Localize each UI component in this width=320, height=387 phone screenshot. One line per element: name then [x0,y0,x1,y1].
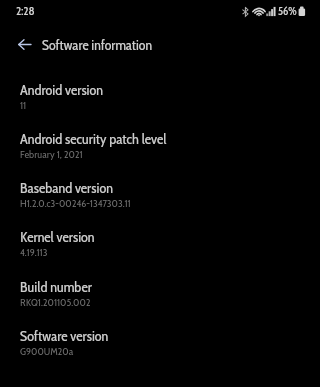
staticText: Software version [20,327,109,344]
staticText: Build number [20,278,92,295]
button[interactable]: Android version [0,82,320,128]
button[interactable]: Baseband version [0,180,320,226]
staticText: RKQ1.201105.002 [20,296,91,309]
staticText: Kernel version [20,228,95,245]
button[interactable]: Android security patch level [0,131,320,177]
button[interactable]: Build number [0,279,320,325]
staticText: Android security patch level [20,130,167,147]
staticText: Baseband version [20,179,113,196]
button[interactable]: Navigate up [12,34,36,55]
staticText: 56% [278,4,297,17]
button[interactable]: Software version [0,328,320,374]
staticText: G900UM20a [20,345,74,358]
staticText: Software information [42,36,153,53]
staticText: 2:28 [16,4,35,18]
staticText: 4.19.113 [20,246,48,259]
staticText: February 1, 2021 [20,148,83,161]
button[interactable]: Kernel version [0,229,320,275]
staticText: H1.2.0.c3-00246-1347303.11 [20,197,131,210]
staticText: 11 [20,99,27,112]
staticText: Android version [20,81,103,98]
